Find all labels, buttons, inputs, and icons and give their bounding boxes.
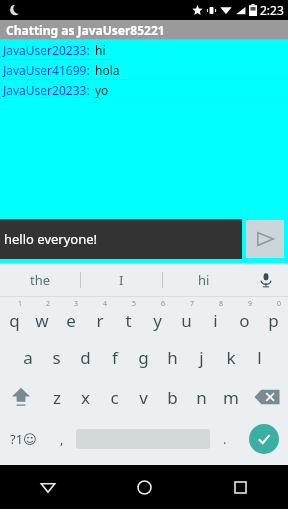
staticText: n (196, 386, 207, 409)
staticText: hi (198, 271, 210, 289)
staticText: i (213, 309, 218, 332)
button[interactable]: 0 (259, 297, 288, 337)
staticText: the (30, 271, 51, 289)
button[interactable]: x (71, 377, 100, 417)
button[interactable]: Backspace (245, 377, 288, 417)
staticText: s (52, 346, 61, 369)
button[interactable]: l (245, 337, 274, 377)
button[interactable]: h (158, 337, 187, 377)
staticText: 1 (18, 299, 23, 309)
button[interactable]: b (158, 377, 187, 417)
button[interactable]: 2 (28, 297, 56, 337)
staticText: g (138, 346, 149, 369)
button[interactable]: g (129, 337, 158, 377)
staticText: l (257, 346, 262, 369)
button[interactable]: the (0, 263, 80, 297)
staticText: f (112, 346, 118, 369)
button[interactable]: hi (163, 263, 244, 297)
button[interactable]: I (81, 263, 162, 297)
staticText: 3 (74, 299, 79, 309)
button[interactable]: 1 (0, 297, 28, 337)
staticText: b (167, 386, 178, 409)
staticText: . (223, 430, 227, 448)
staticText: 2 (46, 299, 51, 309)
button[interactable]: Shift (0, 377, 42, 417)
staticText: a (23, 346, 33, 369)
staticText: c (110, 386, 119, 409)
staticText: k (226, 346, 236, 369)
staticText: h (167, 346, 178, 369)
staticText: p (268, 309, 279, 332)
button[interactable]: JavaUser20233: (0, 40, 288, 59)
staticText: x (81, 386, 90, 409)
staticText: ?1☺ (10, 430, 37, 448)
staticText: JavaUser41699: (3, 62, 90, 78)
staticText: 9 (248, 299, 253, 309)
button[interactable]: JavaUser20233: (0, 80, 288, 99)
staticText: v (139, 386, 148, 409)
staticText: t (125, 309, 132, 332)
staticText: hola (95, 62, 120, 78)
button[interactable]: 5 (114, 297, 143, 337)
button[interactable]: JavaUser41699: (0, 60, 288, 79)
button[interactable]: hello everyone! (0, 219, 242, 259)
button[interactable]: , (47, 417, 76, 461)
button[interactable]: 7 (172, 297, 201, 337)
staticText: z (53, 386, 61, 409)
button[interactable]: 4 (85, 297, 114, 337)
staticText: Chatting as JavaUser85221 (6, 22, 165, 38)
button[interactable]: Recent apps (192, 465, 288, 509)
button[interactable]: a (13, 337, 42, 377)
button[interactable]: s (42, 337, 71, 377)
button[interactable]: v (129, 377, 158, 417)
staticText: hi (95, 42, 106, 58)
staticText: 0 (277, 299, 282, 309)
button[interactable]: 6 (143, 297, 172, 337)
button[interactable]: Enter (239, 417, 288, 461)
staticText: 8 (219, 299, 224, 309)
staticText: 4 (103, 299, 108, 309)
staticText: o (239, 309, 250, 332)
staticText: e (66, 309, 76, 332)
staticText: I (119, 271, 124, 289)
staticText: JavaUser20233: (3, 42, 90, 58)
staticText: 7 (190, 299, 195, 309)
staticText: w (35, 309, 49, 332)
button[interactable]: 9 (230, 297, 259, 337)
staticText: yo (95, 82, 109, 98)
staticText: JavaUser20233: (3, 82, 90, 98)
button[interactable]: Back (0, 465, 96, 509)
button[interactable]: 3 (56, 297, 85, 337)
button[interactable]: . (210, 417, 239, 461)
staticText: r (96, 309, 104, 332)
button[interactable]: j (187, 337, 216, 377)
button[interactable]: ?1☺ (0, 417, 47, 461)
staticText: , (60, 430, 64, 448)
button[interactable]: m (216, 377, 245, 417)
button[interactable]: Voice input (244, 263, 288, 297)
staticText: 6 (161, 299, 166, 309)
staticText: 5 (132, 299, 137, 309)
staticText: u (181, 309, 192, 332)
staticText: d (80, 346, 91, 369)
button[interactable]: z (42, 377, 71, 417)
button[interactable]: 8 (201, 297, 230, 337)
button[interactable]: Home (96, 465, 192, 509)
staticText: y (153, 309, 162, 332)
staticText: 2:23 (260, 2, 284, 18)
staticText: q (9, 309, 20, 332)
button[interactable]: c (100, 377, 129, 417)
staticText: j (199, 346, 204, 369)
button[interactable]: f (100, 337, 129, 377)
staticText: m (223, 386, 239, 409)
button[interactable]: Send (246, 220, 284, 258)
staticText: hello everyone! (4, 230, 98, 248)
button[interactable]: n (187, 377, 216, 417)
button[interactable]: Space (76, 417, 210, 461)
button[interactable]: d (71, 337, 100, 377)
button[interactable]: k (216, 337, 245, 377)
